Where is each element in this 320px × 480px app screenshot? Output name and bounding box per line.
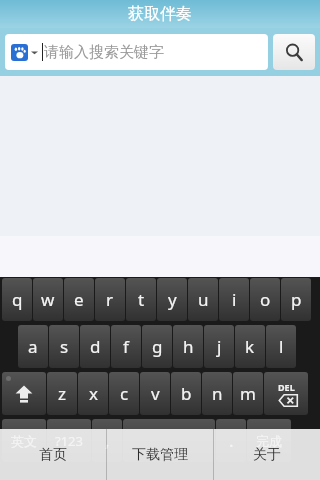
button[interactable]: a <box>18 325 48 368</box>
button[interactable]: u <box>188 278 218 321</box>
staticText: c <box>120 382 129 405</box>
staticText: r <box>106 288 114 311</box>
staticText: a <box>28 335 38 358</box>
staticText: b <box>181 382 192 405</box>
button[interactable]: Shift <box>2 372 46 415</box>
staticText: y <box>168 288 177 311</box>
staticText: g <box>152 335 163 358</box>
button[interactable]: t <box>126 278 156 321</box>
button[interactable]: 下载管理 <box>107 429 213 480</box>
button[interactable]: k <box>235 325 265 368</box>
button[interactable]: Search <box>273 34 315 70</box>
staticText: z <box>58 382 66 405</box>
button[interactable]: Search engine <box>5 34 268 70</box>
button[interactable]: j <box>204 325 234 368</box>
staticText: . <box>229 429 234 452</box>
staticText: h <box>183 335 194 358</box>
button[interactable]: 英文 <box>2 419 46 462</box>
button[interactable]: v <box>140 372 170 415</box>
button[interactable]: o <box>250 278 280 321</box>
staticText: e <box>74 288 84 311</box>
staticText: p <box>291 288 302 311</box>
staticText: t <box>138 288 145 311</box>
staticText: 英文 <box>11 433 37 449</box>
button[interactable]: ?123 <box>47 419 91 462</box>
staticText: i <box>232 288 237 311</box>
button[interactable]: q <box>2 278 32 321</box>
button[interactable]: m <box>233 372 263 415</box>
staticText: 下载管理 <box>132 446 188 464</box>
button[interactable]: y <box>157 278 187 321</box>
staticText: w <box>41 288 55 311</box>
other: Search engine <box>11 44 28 61</box>
staticText: v <box>151 382 160 405</box>
staticText: m <box>240 382 256 405</box>
staticText: u <box>198 288 209 311</box>
button[interactable]: Key <box>123 419 215 462</box>
button[interactable]: f <box>111 325 141 368</box>
staticText: 请输入搜索关键字 <box>44 43 164 62</box>
button[interactable]: g <box>142 325 172 368</box>
button[interactable]: 完成 <box>247 419 291 462</box>
button[interactable]: p <box>281 278 311 321</box>
button[interactable]: b <box>171 372 201 415</box>
staticText: s <box>60 335 69 358</box>
staticText: x <box>89 382 98 405</box>
button[interactable]: r <box>95 278 125 321</box>
button[interactable]: s <box>49 325 79 368</box>
staticText: n <box>212 382 223 405</box>
button[interactable]: 关于 <box>214 429 320 480</box>
staticText: 获取伴奏 <box>128 4 192 24</box>
staticText: DEL <box>278 381 295 393</box>
staticText: ?123 <box>55 432 83 450</box>
staticText: f <box>123 335 129 358</box>
button[interactable]: d <box>80 325 110 368</box>
staticText: d <box>90 335 101 358</box>
button[interactable]: h <box>173 325 203 368</box>
button[interactable]: l <box>266 325 296 368</box>
staticText: o <box>260 288 271 311</box>
staticText: l <box>279 335 284 358</box>
button[interactable]: . <box>216 419 246 462</box>
button[interactable]: i <box>219 278 249 321</box>
button[interactable]: x <box>78 372 108 415</box>
button[interactable]: e <box>64 278 94 321</box>
staticText: 完成 <box>256 433 282 449</box>
button[interactable]: 首页 <box>0 429 106 480</box>
button[interactable]: , <box>92 419 122 462</box>
staticText: j <box>217 335 222 358</box>
staticText: 关于 <box>253 446 281 464</box>
button[interactable]: Delete <box>264 372 308 415</box>
button[interactable]: c <box>109 372 139 415</box>
staticText: k <box>245 335 255 358</box>
button[interactable]: z <box>47 372 77 415</box>
staticText: q <box>12 288 23 311</box>
staticText: 首页 <box>39 446 67 464</box>
button[interactable]: w <box>33 278 63 321</box>
staticText: , <box>105 429 110 452</box>
button[interactable]: n <box>202 372 232 415</box>
